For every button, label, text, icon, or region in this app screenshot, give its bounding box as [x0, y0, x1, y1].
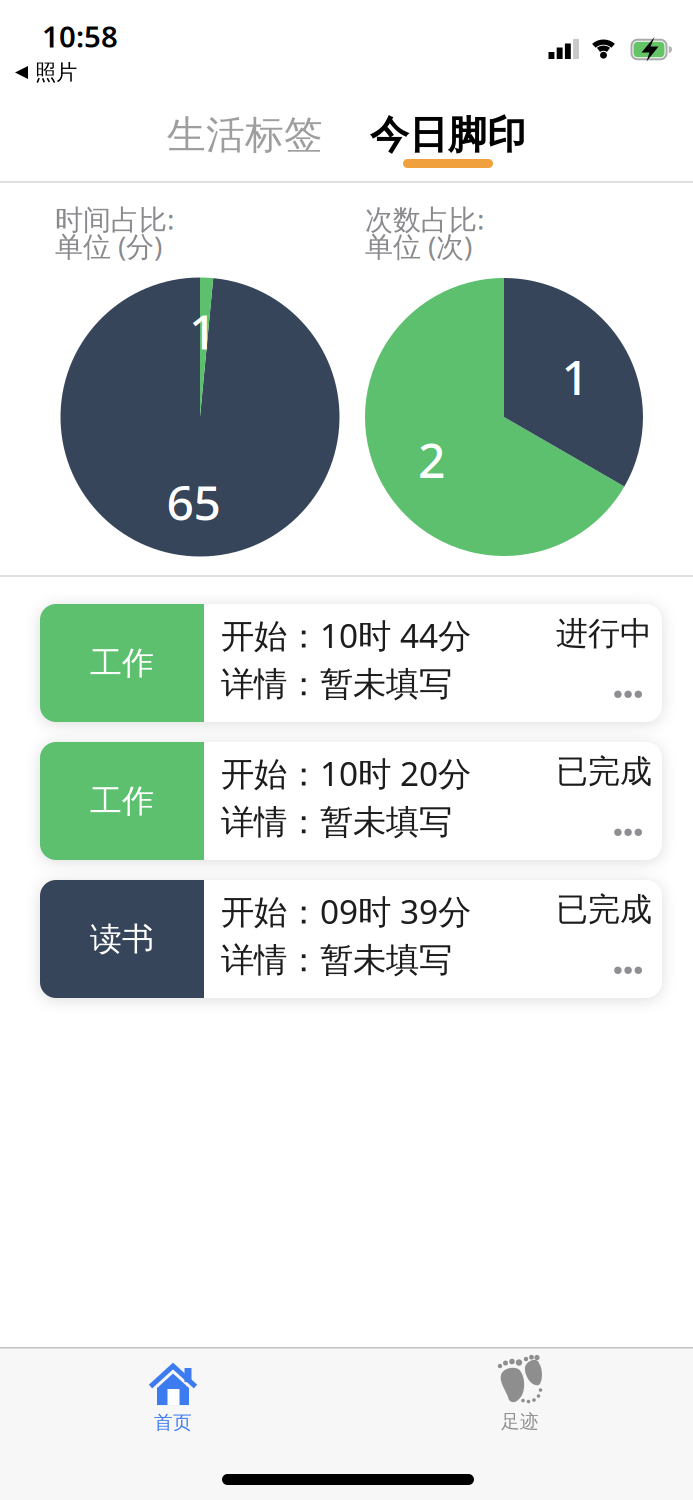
staticText: 时间占比: — [55, 200, 175, 238]
button[interactable]: 更多 — [614, 691, 652, 698]
button[interactable]: 返回照片 — [15, 59, 77, 86]
button[interactable]: 读书 — [40, 880, 662, 998]
staticText: 详情：暂未填写 — [221, 664, 452, 705]
button[interactable]: 生活标签 — [167, 111, 323, 159]
staticText: 首页 — [154, 1411, 192, 1434]
staticText: 1 — [561, 345, 588, 408]
staticText: 详情：暂未填写 — [221, 940, 452, 981]
button[interactable]: 首页 — [148, 1362, 198, 1434]
button[interactable]: 今日脚印 — [370, 111, 526, 159]
staticText: 工作 — [90, 643, 154, 683]
staticText: 1 — [189, 299, 216, 363]
button[interactable]: 更多 — [614, 967, 652, 974]
staticText: 65 — [166, 470, 220, 534]
staticText: 单位 (分) — [55, 227, 162, 265]
staticText: 开始：10时 44分 — [221, 613, 471, 657]
button[interactable]: 工作 — [40, 604, 662, 722]
staticText: 开始：10时 20分 — [221, 751, 471, 795]
staticText: 进行中 — [556, 614, 652, 653]
staticText: 已完成 — [556, 890, 652, 929]
staticText: 足迹 — [501, 1410, 539, 1433]
button[interactable]: 更多 — [614, 829, 652, 836]
button[interactable]: 工作 — [40, 742, 662, 860]
staticText: 2 — [418, 428, 445, 491]
staticText: 工作 — [90, 781, 154, 821]
staticText: 单位 (次) — [365, 227, 472, 265]
staticText: 10:58 — [42, 16, 118, 55]
staticText: 读书 — [90, 919, 154, 959]
staticText: 生活标签 — [167, 111, 323, 159]
staticText: 照片 — [35, 59, 77, 86]
staticText: 次数占比: — [365, 200, 485, 238]
staticText: 开始：09时 39分 — [221, 889, 471, 933]
button[interactable]: 足迹 — [497, 1355, 543, 1433]
staticText: 详情：暂未填写 — [221, 802, 452, 843]
staticText: 已完成 — [556, 752, 652, 791]
staticText: 今日脚印 — [370, 111, 526, 159]
